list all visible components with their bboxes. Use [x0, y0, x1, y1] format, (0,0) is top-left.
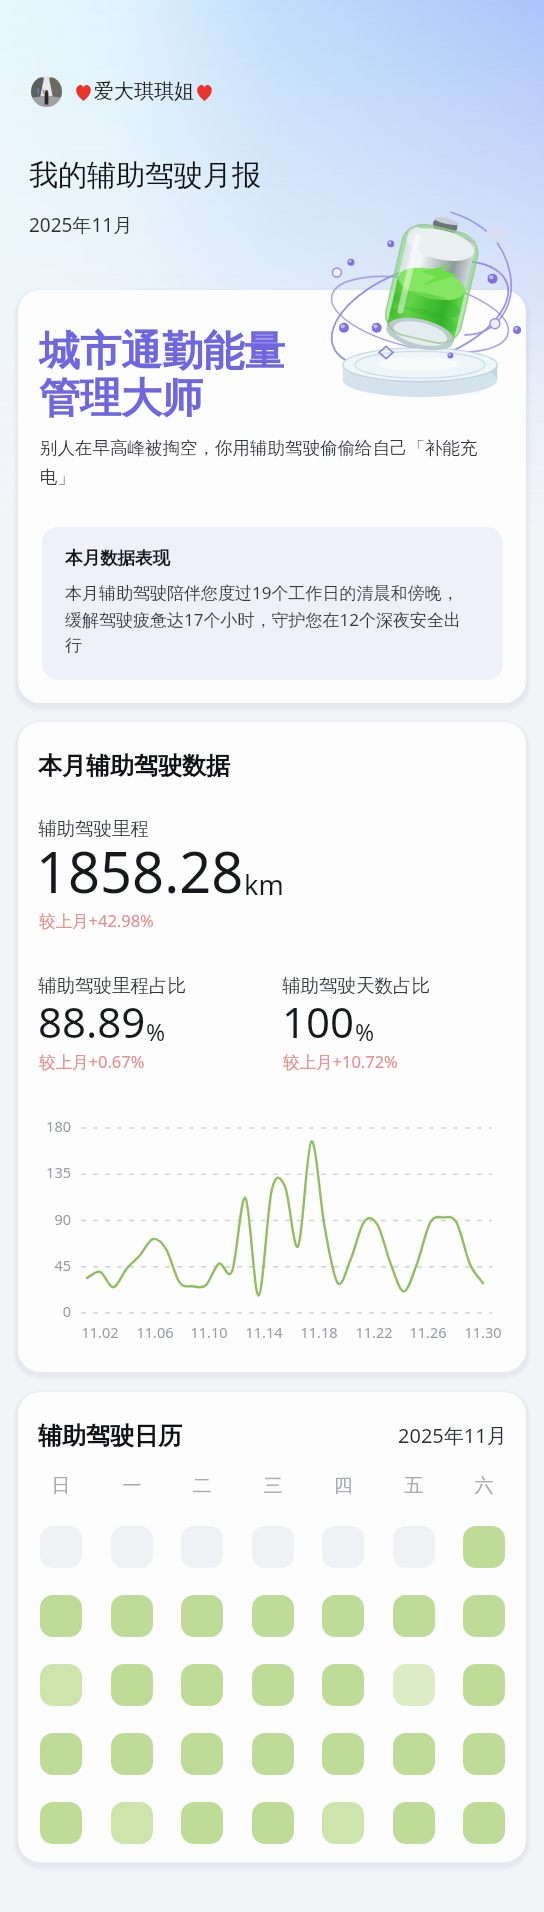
- button[interactable]: [111, 1595, 153, 1637]
- staticText: 11.02: [70, 1322, 130, 1342]
- button[interactable]: [181, 1664, 223, 1706]
- button[interactable]: [252, 1595, 294, 1637]
- staticText: 辅助驾驶天数占比: [282, 974, 430, 997]
- staticText: 别人在早高峰被掏空，你用辅助驾驶偷偷给自己「补能充电」: [40, 437, 495, 489]
- button[interactable]: [111, 1526, 153, 1568]
- staticText: 较上月+10.72%: [283, 1050, 398, 1073]
- staticText: 二: [181, 1474, 223, 1498]
- button[interactable]: [181, 1733, 223, 1775]
- button[interactable]: [463, 1802, 505, 1844]
- staticText: 1858.28: [36, 833, 244, 909]
- staticText: 一: [111, 1474, 153, 1498]
- button[interactable]: [322, 1664, 364, 1706]
- staticText: 本月辅助驾驶数据: [38, 751, 230, 781]
- button[interactable]: [181, 1526, 223, 1568]
- staticText: 90: [18, 1209, 71, 1229]
- staticText: 2025年11月: [29, 212, 133, 238]
- button[interactable]: [322, 1595, 364, 1637]
- button[interactable]: [463, 1526, 505, 1568]
- staticText: 三: [252, 1474, 294, 1498]
- staticText: 较上月+42.98%: [39, 909, 154, 932]
- staticText: 11.10: [179, 1322, 239, 1342]
- staticText: 日: [40, 1474, 82, 1498]
- staticText: 五: [393, 1474, 435, 1498]
- staticText: 180: [18, 1116, 71, 1136]
- button[interactable]: [111, 1802, 153, 1844]
- staticText: 辅助驾驶里程: [38, 817, 149, 840]
- button[interactable]: [40, 1595, 82, 1637]
- button[interactable]: [111, 1733, 153, 1775]
- staticText: 四: [322, 1474, 364, 1498]
- staticText: 0: [18, 1301, 71, 1321]
- staticText: 辅助驾驶里程占比: [38, 974, 186, 997]
- staticText: 六: [463, 1474, 505, 1498]
- button[interactable]: [463, 1733, 505, 1775]
- staticText: %: [146, 1016, 166, 1047]
- staticText: 100: [282, 993, 355, 1050]
- staticText: 辅助驾驶日历: [38, 1421, 182, 1451]
- button[interactable]: [40, 1733, 82, 1775]
- staticText: 2025年11月: [398, 1422, 507, 1449]
- button[interactable]: [40, 1802, 82, 1844]
- staticText: 较上月+0.67%: [39, 1050, 145, 1073]
- button[interactable]: [252, 1526, 294, 1568]
- button[interactable]: [393, 1595, 435, 1637]
- staticText: 爱大琪琪姐: [94, 79, 194, 104]
- button[interactable]: [463, 1595, 505, 1637]
- button[interactable]: [252, 1733, 294, 1775]
- button[interactable]: [252, 1802, 294, 1844]
- staticText: 11.18: [289, 1322, 349, 1342]
- button[interactable]: [393, 1733, 435, 1775]
- button[interactable]: [393, 1664, 435, 1706]
- button[interactable]: [252, 1664, 294, 1706]
- staticText: 我的辅助驾驶月报: [29, 157, 261, 194]
- staticText: 11.26: [398, 1322, 458, 1342]
- button[interactable]: [322, 1733, 364, 1775]
- staticText: 11.30: [453, 1322, 513, 1342]
- staticText: km: [244, 866, 284, 903]
- button[interactable]: [393, 1526, 435, 1568]
- button[interactable]: [322, 1526, 364, 1568]
- button[interactable]: [40, 1664, 82, 1706]
- staticText: 城市通勤能量 管理大师: [39, 326, 285, 424]
- staticText: 本月数据表现: [65, 547, 170, 569]
- staticText: 88.89: [38, 993, 146, 1050]
- button[interactable]: [181, 1802, 223, 1844]
- staticText: 11.06: [125, 1322, 185, 1342]
- button[interactable]: [40, 1526, 82, 1568]
- staticText: %: [355, 1016, 375, 1047]
- staticText: 135: [18, 1162, 71, 1182]
- staticText: 11.22: [344, 1322, 404, 1342]
- button[interactable]: [322, 1802, 364, 1844]
- button[interactable]: [393, 1802, 435, 1844]
- staticText: 45: [18, 1255, 71, 1275]
- button[interactable]: [181, 1595, 223, 1637]
- staticText: 11.14: [234, 1322, 294, 1342]
- staticText: 本月辅助驾驶陪伴您度过19个工作日的清晨和傍晚，缓解驾驶疲惫达17个小时，守护您…: [65, 581, 469, 656]
- button[interactable]: [111, 1664, 153, 1706]
- button[interactable]: [463, 1664, 505, 1706]
- button[interactable]: 用户头像: [31, 76, 214, 107]
